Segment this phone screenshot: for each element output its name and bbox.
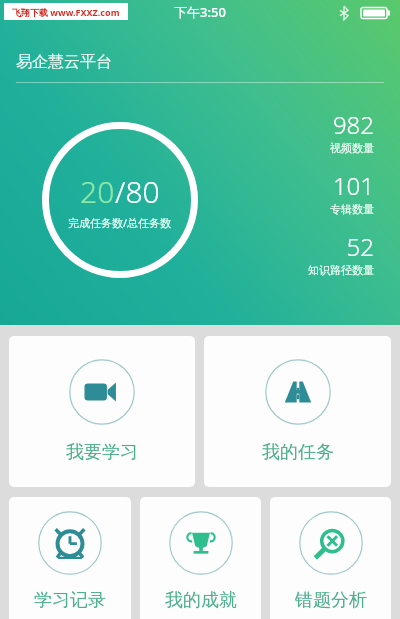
staticText: 视频数量	[330, 141, 374, 155]
staticText: 我的任务	[262, 441, 334, 464]
staticText: 101	[332, 169, 374, 202]
staticText: 易企慧云平台	[16, 52, 112, 72]
button[interactable]: 错题分析	[270, 497, 391, 619]
button[interactable]: 我要学习	[9, 336, 195, 487]
button[interactable]: 学习记录	[9, 497, 131, 619]
button[interactable]: 我的任务	[204, 336, 391, 487]
staticText: 飞翔下载 www.FXXZ.com	[12, 6, 120, 18]
staticText: 完成任务数/总任务数	[68, 215, 172, 230]
staticText: 知识路径数量	[308, 263, 374, 277]
staticText: 我的成就	[165, 589, 237, 612]
staticText: 专辑数量	[330, 202, 374, 216]
staticText: 下午3:50	[174, 3, 226, 21]
button[interactable]: 我的成就	[140, 497, 261, 619]
staticText: 982	[332, 108, 374, 141]
staticText: 错题分析	[295, 589, 367, 612]
staticText: 学习记录	[34, 589, 106, 612]
staticText: 52	[346, 230, 374, 263]
staticText: 我要学习	[66, 441, 138, 464]
staticText: 20	[80, 171, 115, 212]
staticText: /80	[115, 171, 160, 212]
